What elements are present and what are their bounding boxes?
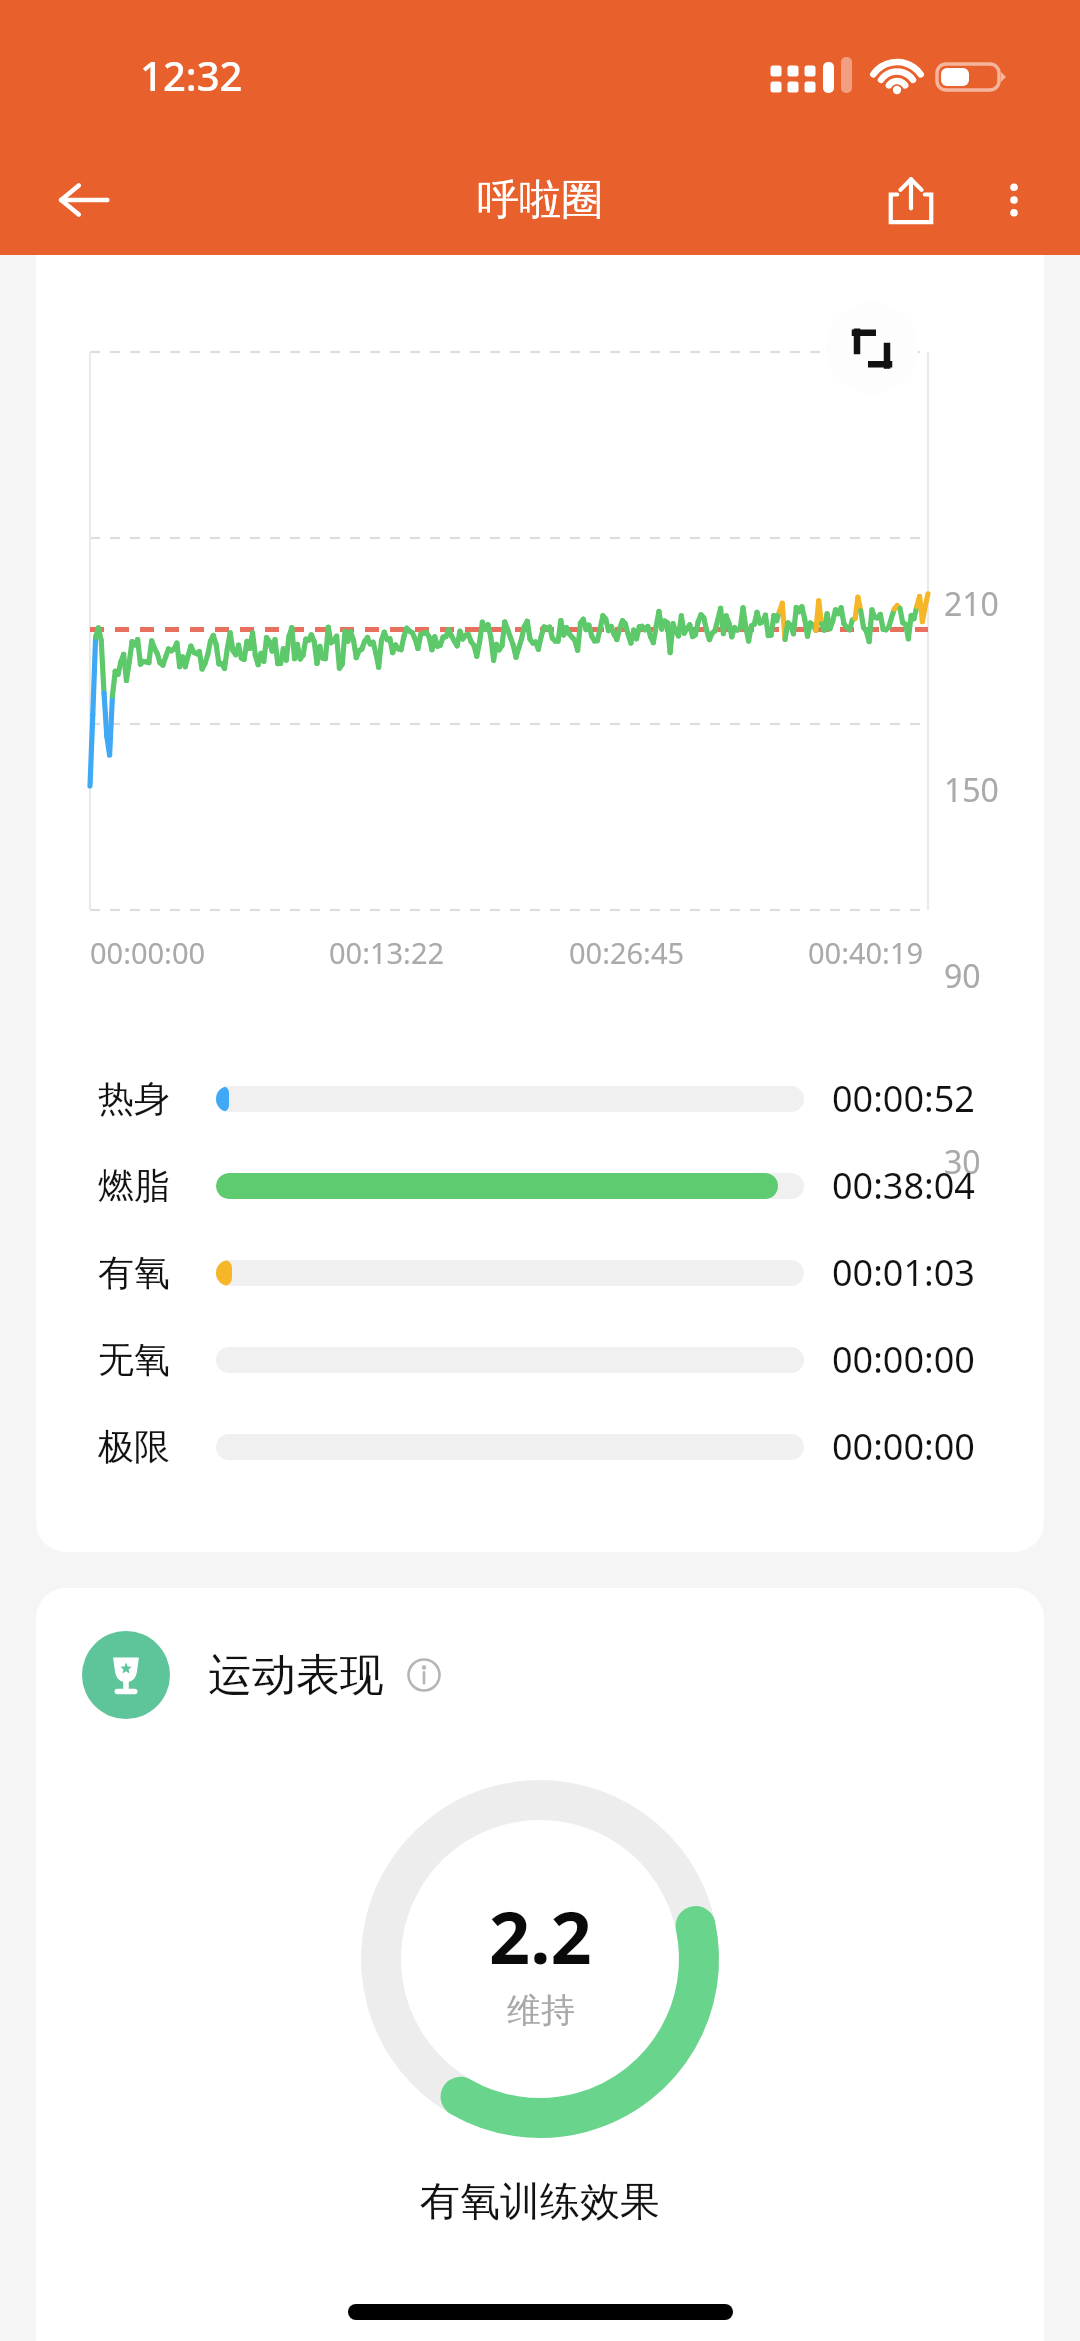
staticText: 00:00:00 [832,1335,975,1384]
staticText: 00:40:19 [808,933,924,972]
staticText: 00:00:00 [832,1422,975,1471]
button[interactable]: 运动表现 [82,1631,1044,1719]
staticText: 30 [944,1140,981,1184]
button[interactable]: 有氧 [98,1229,996,1316]
staticText: 维持 [507,1989,575,2032]
button[interactable]: Back [48,164,120,236]
staticText: 00:38:04 [832,1161,975,1210]
staticText: 00:00:52 [832,1074,975,1123]
staticText: 210 [944,582,999,626]
staticText: 2.2 [489,1887,592,1985]
staticText: 无氧 [98,1337,216,1382]
button[interactable]: 热身 [98,1055,996,1142]
staticText: 极限 [98,1424,216,1469]
staticText: 00:13:22 [329,933,445,972]
staticText: 热身 [98,1076,216,1121]
staticText: 运动表现 [208,1648,384,1703]
button[interactable]: More options [978,164,1050,236]
button[interactable]: 无氧 [98,1316,996,1403]
staticText: 00:26:45 [569,933,685,972]
button[interactable]: 极限 [98,1403,996,1490]
staticText: 00:00:00 [90,933,206,972]
staticText: 12:32 [140,48,243,102]
button[interactable]: Fullscreen [826,302,918,394]
staticText: 燃脂 [98,1163,216,1208]
staticText: 有氧 [98,1250,216,1295]
button[interactable]: Share [872,161,950,239]
button[interactable]: 燃脂 [98,1142,996,1229]
staticText: 00:01:03 [832,1248,975,1297]
staticText: 有氧训练效果 [36,2176,1044,2226]
staticText: 150 [944,768,999,812]
staticText: 呼啦圈 [477,174,603,227]
button[interactable]: Info [402,1653,446,1697]
staticText: 90 [944,954,981,998]
